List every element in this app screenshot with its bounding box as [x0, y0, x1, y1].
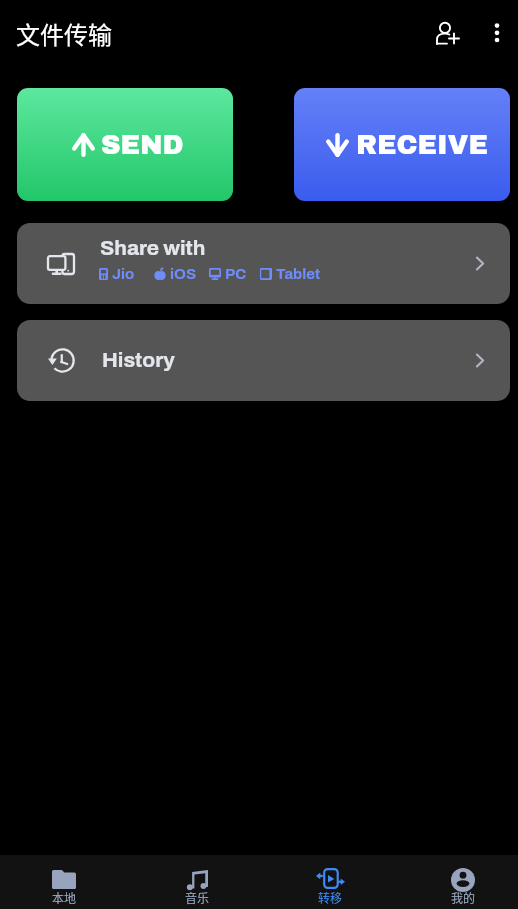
button[interactable]: RECEIVE — [294, 88, 510, 201]
button[interactable]: Add person — [424, 9, 472, 57]
button[interactable]: More options — [473, 9, 518, 57]
button[interactable]: 转移 — [286, 855, 374, 909]
button[interactable]: 本地 — [20, 855, 108, 909]
staticText: Tablet — [276, 266, 321, 282]
staticText: 音乐 — [185, 889, 210, 906]
button[interactable]: History — [17, 320, 510, 401]
button[interactable]: 我的 — [419, 855, 507, 909]
staticText: Share with — [100, 237, 206, 260]
staticText: 转移 — [318, 889, 343, 906]
staticText: 文件传输 — [16, 16, 112, 51]
staticText: 我的 — [451, 889, 476, 906]
staticText: SEND — [101, 130, 184, 159]
button[interactable]: 音乐 — [153, 855, 241, 909]
staticText: Jio — [112, 266, 135, 282]
staticText: PC — [225, 266, 247, 282]
staticText: RECEIVE — [356, 130, 489, 159]
staticText: 本地 — [52, 889, 77, 906]
button[interactable]: SEND — [17, 88, 233, 201]
staticText: History — [102, 349, 175, 372]
button[interactable]: Share with — [17, 223, 510, 304]
staticText: iOS — [170, 266, 197, 282]
